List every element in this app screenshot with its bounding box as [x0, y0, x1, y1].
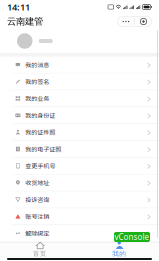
staticText: vConsole [114, 232, 149, 242]
staticText: 变更手机号 [25, 161, 55, 170]
staticText: 我的电子证照 [25, 145, 61, 153]
button[interactable] [0, 29, 159, 54]
staticText: 我的消息 [25, 60, 49, 69]
button[interactable]: 收货地址 [0, 174, 159, 191]
staticText: 我的业务 [25, 94, 49, 103]
staticText: 收货地址 [25, 178, 49, 187]
staticText: 14:11 [7, 1, 30, 13]
button[interactable]: More [117, 16, 134, 26]
staticText: 我的 [112, 250, 126, 258]
button[interactable]: Close [135, 16, 152, 26]
staticText: 我的身份证 [25, 111, 55, 120]
button[interactable]: 我的业务 [0, 90, 159, 107]
button[interactable]: 我的证件照 [0, 124, 159, 141]
staticText: 投诉咨询 [25, 195, 49, 204]
button[interactable]: 首页 [0, 243, 79, 257]
button[interactable]: 我的身份证 [0, 107, 159, 124]
button[interactable]: 解除绑定 [0, 225, 159, 241]
button[interactable]: 我的签名 [0, 73, 159, 90]
button[interactable]: 我的消息 [0, 57, 159, 73]
button[interactable]: vConsole [114, 232, 150, 242]
staticText: 我的证件照 [25, 128, 55, 137]
staticText: 云南建管 [7, 16, 43, 27]
staticText: 首页 [33, 250, 47, 258]
button[interactable]: 我的电子证照 [0, 141, 159, 158]
button[interactable]: 账号注销 [0, 208, 159, 225]
staticText: 我的签名 [25, 77, 49, 86]
button[interactable]: 我的 [79, 243, 159, 257]
button[interactable]: 投诉咨询 [0, 191, 159, 208]
staticText: 账号注销 [25, 212, 49, 221]
button[interactable]: 变更手机号 [0, 158, 159, 175]
staticText: 解除绑定 [25, 229, 49, 238]
